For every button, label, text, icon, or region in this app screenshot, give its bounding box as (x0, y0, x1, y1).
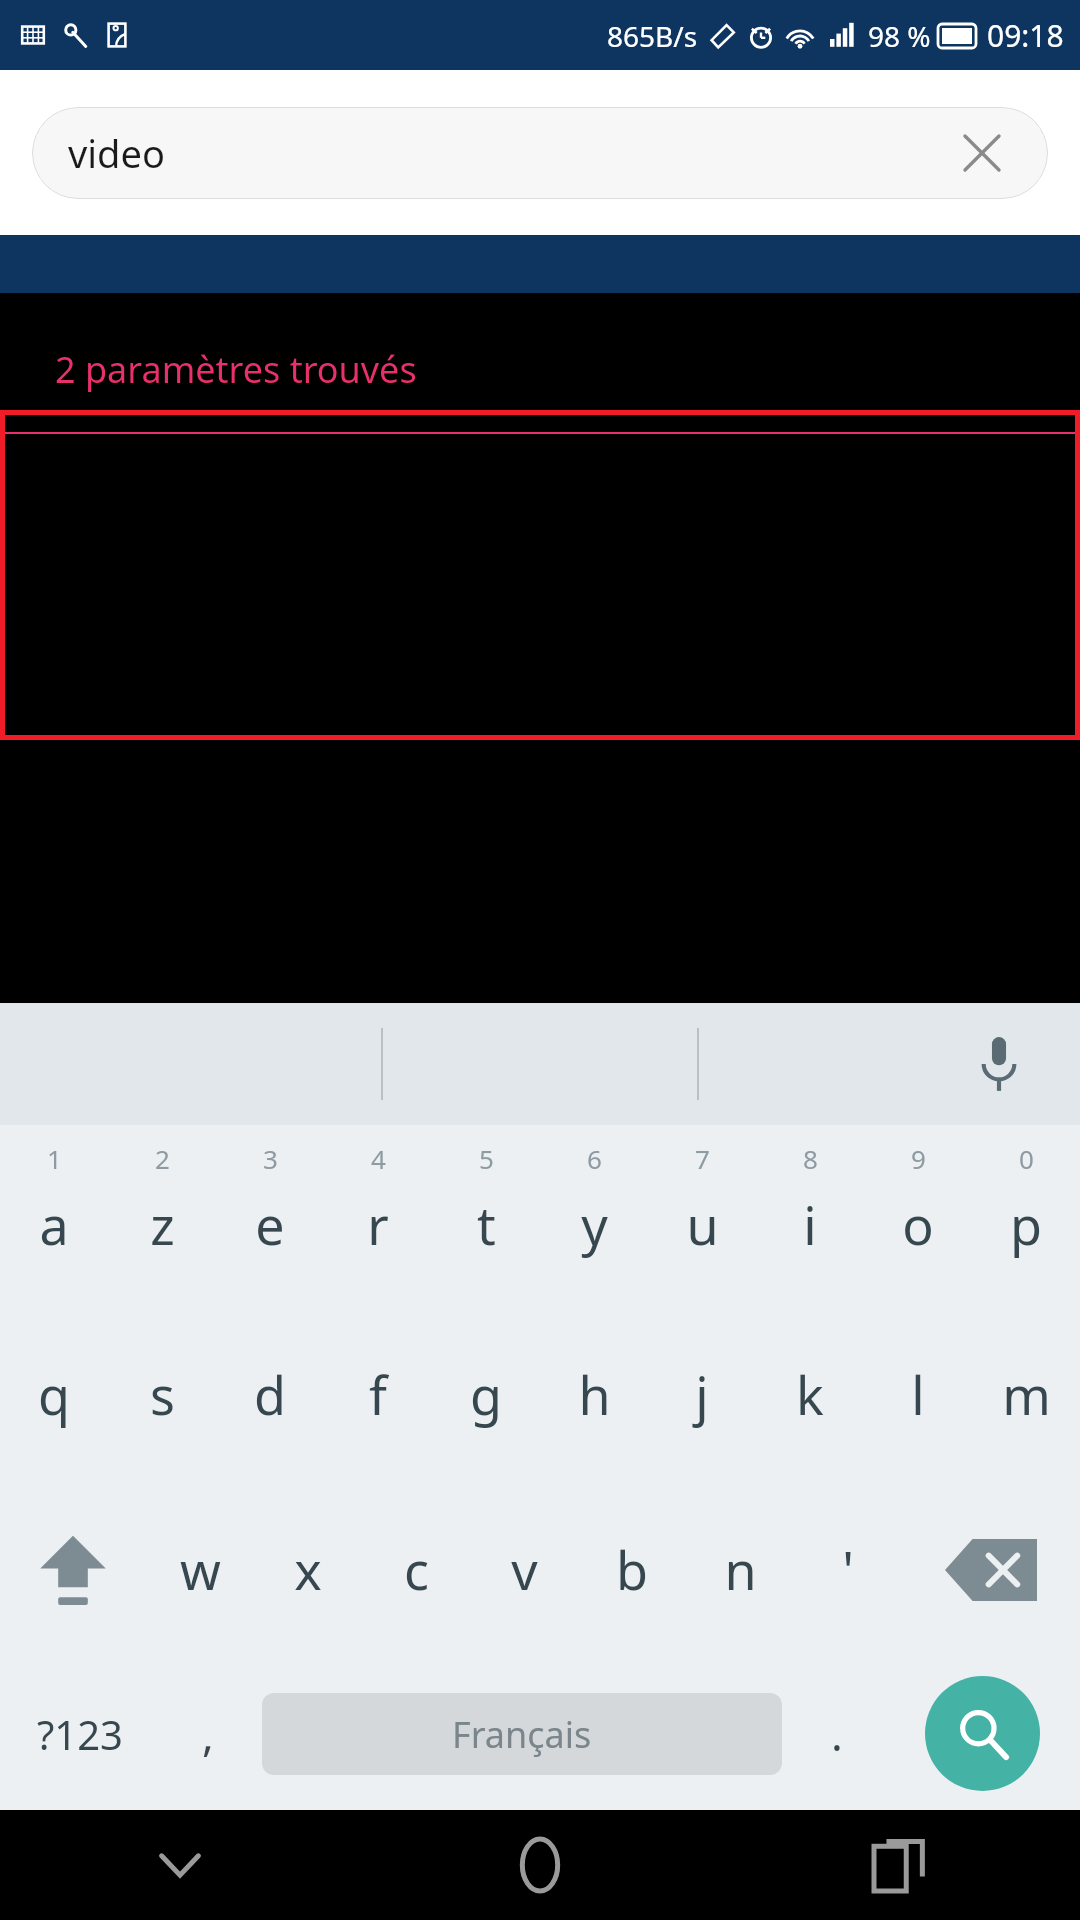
button[interactable]: l (864, 1307, 972, 1482)
staticText: k (796, 1359, 824, 1430)
button[interactable]: 5 (432, 1125, 540, 1307)
staticText: 3 (263, 1141, 278, 1176)
staticText: , (202, 1704, 214, 1764)
staticText: 1 (47, 1141, 62, 1176)
button[interactable]: s (108, 1307, 216, 1482)
button[interactable]: Home (485, 1810, 595, 1920)
staticText: m (1002, 1359, 1051, 1430)
staticText: h (578, 1359, 611, 1430)
button[interactable]: g (432, 1307, 540, 1482)
button[interactable]: 7 (648, 1125, 756, 1307)
staticText: t (477, 1189, 496, 1260)
staticText: g (470, 1359, 502, 1430)
staticText: 7 (695, 1141, 710, 1176)
staticText: c (404, 1534, 429, 1605)
staticText: b (616, 1534, 648, 1605)
button[interactable]: Recent apps (845, 1810, 955, 1920)
staticText: l (911, 1359, 925, 1430)
button[interactable]: x (254, 1482, 362, 1657)
staticText: . (831, 1704, 843, 1764)
staticText: f (369, 1359, 387, 1430)
button[interactable]: 0 (972, 1125, 1080, 1307)
staticText: video (68, 127, 165, 179)
button[interactable]: ' (794, 1482, 902, 1657)
button[interactable] (0, 410, 1080, 740)
button[interactable]: c (362, 1482, 470, 1657)
staticText: i (803, 1189, 817, 1260)
button[interactable]: n (686, 1482, 794, 1657)
button[interactable]: h (540, 1307, 648, 1482)
button[interactable]: Hide keyboard (125, 1810, 235, 1920)
staticText: 98 % (868, 17, 931, 55)
button[interactable]: m (972, 1307, 1080, 1482)
button[interactable]: q (0, 1307, 108, 1482)
staticText: j (695, 1359, 709, 1430)
staticText: 865B/s (607, 17, 698, 55)
button[interactable]: 2 (108, 1125, 216, 1307)
button[interactable]: Clear search (952, 123, 1012, 183)
staticText: s (150, 1359, 175, 1430)
staticText: q (38, 1359, 70, 1430)
staticText: 9 (911, 1141, 926, 1176)
staticText: n (724, 1534, 757, 1605)
button[interactable]: Français (262, 1693, 782, 1775)
staticText: e (255, 1189, 285, 1260)
button[interactable]: Search (925, 1676, 1040, 1791)
staticText: 2 paramètres trouvés (55, 345, 417, 394)
button[interactable]: j (648, 1307, 756, 1482)
button[interactable]: Backspace (902, 1482, 1080, 1657)
button[interactable]: 3 (216, 1125, 324, 1307)
staticText: a (39, 1189, 69, 1260)
button[interactable]: b (578, 1482, 686, 1657)
staticText: Français (452, 1710, 592, 1759)
staticText: u (686, 1189, 719, 1260)
staticText: w (180, 1534, 221, 1605)
button[interactable]: 8 (756, 1125, 864, 1307)
staticText: 0 (1019, 1141, 1034, 1176)
staticText: p (1010, 1189, 1042, 1260)
button[interactable]: 1 (0, 1125, 108, 1307)
staticText: r (367, 1189, 389, 1260)
button[interactable]: d (216, 1307, 324, 1482)
button[interactable]: , (159, 1657, 256, 1810)
staticText: v (511, 1534, 538, 1605)
staticText: z (150, 1189, 175, 1260)
staticText: o (902, 1189, 934, 1260)
button[interactable]: Voice input (954, 1019, 1044, 1109)
button[interactable]: w (146, 1482, 254, 1657)
button[interactable]: ?123 (0, 1657, 159, 1810)
staticText: 5 (479, 1141, 494, 1176)
staticText: ?123 (37, 1707, 123, 1761)
button[interactable]: . (788, 1657, 885, 1810)
button[interactable]: Shift (0, 1482, 146, 1657)
button[interactable]: 6 (540, 1125, 648, 1307)
staticText: 4 (371, 1141, 386, 1176)
button[interactable]: 4 (324, 1125, 432, 1307)
staticText: d (254, 1359, 286, 1430)
button[interactable]: f (324, 1307, 432, 1482)
staticText: x (294, 1534, 322, 1605)
button[interactable]: video (32, 107, 1048, 199)
staticText: y (581, 1189, 608, 1260)
staticText: ' (842, 1534, 854, 1605)
staticText: 09:18 (987, 15, 1064, 56)
staticText: 6 (587, 1141, 602, 1176)
staticText: 8 (803, 1141, 818, 1176)
button[interactable]: v (470, 1482, 578, 1657)
button[interactable]: 9 (864, 1125, 972, 1307)
staticText: 2 (155, 1141, 170, 1176)
button[interactable]: k (756, 1307, 864, 1482)
